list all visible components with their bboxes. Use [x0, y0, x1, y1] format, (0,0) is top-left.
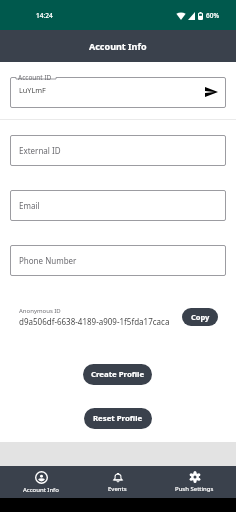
staticText: External ID [19, 145, 61, 156]
button[interactable]: Push Settings [155, 466, 234, 498]
staticText: Push Settings [175, 485, 214, 493]
button[interactable]: Account Info [2, 466, 80, 498]
staticText: Copy [191, 312, 210, 322]
staticText: d9a506df-6638-4189-a909-1f5fda17caca [19, 316, 170, 327]
staticText: 60% [206, 11, 219, 20]
staticText: LuYLmF [19, 85, 46, 95]
button[interactable]: Reset Profile [84, 408, 152, 429]
staticText: Phone Number [19, 255, 77, 266]
button[interactable]: Send [204, 85, 218, 99]
button[interactable]: External ID [10, 135, 226, 166]
staticText: Email [19, 200, 40, 211]
staticText: Reset Profile [93, 413, 143, 424]
button[interactable]: Events [78, 466, 157, 498]
staticText: Account Info [23, 486, 59, 494]
button[interactable]: LuYLmF [10, 77, 226, 108]
staticText: Account Info [89, 40, 147, 52]
button[interactable]: Phone Number [10, 245, 226, 276]
staticText: Account ID [18, 73, 52, 82]
staticText: Anonymous ID [19, 307, 61, 315]
staticText: Create Profile [91, 369, 145, 380]
button[interactable]: Email [10, 190, 226, 221]
staticText: 14:24 [36, 11, 53, 20]
button[interactable]: Copy [182, 308, 218, 326]
staticText: Events [108, 485, 127, 493]
button[interactable]: Create Profile [83, 364, 152, 385]
